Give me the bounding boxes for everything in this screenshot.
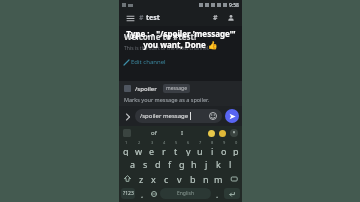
button[interactable]: Shift (119, 171, 135, 186)
staticText: w (135, 145, 143, 156)
staticText: o (221, 145, 227, 156)
button[interactable]: Menu (124, 12, 136, 24)
button[interactable]: Enter (224, 188, 240, 199)
button[interactable]: ?123 (121, 188, 135, 199)
staticText: v (177, 173, 182, 185)
staticText: 3 (151, 140, 154, 145)
staticText: t (174, 145, 178, 156)
staticText: e (149, 145, 155, 156)
staticText: 4 (163, 140, 166, 145)
button[interactable]: /spoiler message (140, 109, 217, 123)
staticText: y (186, 145, 191, 156)
staticText: # (213, 13, 218, 23)
button[interactable]: Backspace (225, 171, 242, 186)
button[interactable]: /spoiler (124, 84, 237, 93)
button[interactable]: n (199, 171, 212, 186)
staticText: c (164, 173, 169, 185)
button[interactable]: f (164, 156, 176, 171)
staticText: u (197, 145, 203, 156)
button[interactable]: g (176, 156, 188, 171)
staticText: English (177, 190, 195, 197)
staticText: . (216, 189, 219, 198)
button[interactable]: x (147, 171, 160, 186)
button[interactable]: I (181, 129, 184, 137)
button[interactable]: a (126, 156, 139, 171)
button[interactable]: b (186, 171, 199, 186)
staticText: i (211, 145, 214, 156)
staticText: f (168, 158, 172, 170)
button[interactable]: Edit channel (124, 58, 166, 66)
button[interactable]: 9 (218, 140, 230, 156)
staticText: This is the start of the #test channel. (124, 45, 210, 52)
button[interactable]: Language (149, 189, 158, 198)
staticText: z (139, 173, 144, 185)
staticText: test (146, 13, 160, 23)
staticText: s (143, 158, 148, 170)
staticText: l (229, 158, 232, 170)
staticText: message (166, 85, 187, 92)
button[interactable]: v (173, 171, 186, 186)
staticText: q (123, 145, 129, 156)
staticText: you want, Done 👍 (143, 39, 218, 50)
button[interactable]: 6 (182, 140, 194, 156)
staticText: 8 (211, 140, 214, 145)
button[interactable]: Attach (122, 111, 133, 122)
staticText: p (233, 145, 239, 156)
button[interactable]: 3 (145, 140, 158, 156)
button[interactable]: 0 (230, 140, 242, 156)
staticText: 9 (223, 140, 226, 145)
button[interactable]: Send (225, 109, 239, 123)
button[interactable]: Clipboard (123, 129, 131, 137)
staticText: 7 (199, 140, 202, 145)
button[interactable]: h (188, 156, 200, 171)
button[interactable]: 7 (194, 140, 206, 156)
staticText: n (203, 173, 209, 185)
staticText: 9:58 (229, 2, 239, 9)
staticText: 5 (175, 140, 178, 145)
button[interactable]: d (152, 156, 164, 171)
staticText: b (190, 173, 196, 185)
button[interactable]: 2 (132, 140, 145, 156)
staticText: Welcome to #test! (124, 31, 197, 42)
staticText: /spoiler message (140, 112, 189, 120)
button[interactable]: Voice input (230, 129, 238, 137)
button[interactable]: of (151, 129, 157, 137)
button[interactable]: j (200, 156, 212, 171)
button[interactable]: 5 (170, 140, 182, 156)
button[interactable]: 8 (206, 140, 218, 156)
button[interactable]: k (212, 156, 224, 171)
button[interactable]: 4 (158, 140, 170, 156)
button[interactable]: English (160, 188, 211, 199)
button[interactable]: Search (209, 12, 221, 24)
staticText: Edit channel (131, 58, 166, 66)
button[interactable]: z (135, 171, 147, 186)
button[interactable]: Period (213, 189, 222, 198)
button[interactable]: s (139, 156, 152, 171)
staticText: x (151, 173, 156, 185)
button[interactable]: Favorites (219, 130, 226, 137)
staticText: g (179, 158, 185, 170)
staticText: m (214, 173, 223, 185)
staticText: 0 (235, 140, 238, 145)
staticText: 1 (125, 140, 128, 145)
button[interactable]: Emoji (209, 112, 217, 120)
staticText: ?123 (123, 190, 134, 197)
button[interactable]: Members (225, 12, 237, 24)
staticText: r (162, 145, 166, 156)
button[interactable]: 1 (119, 140, 132, 156)
staticText: a (130, 158, 136, 170)
staticText: Type : - "/spoiler 'message'" (126, 28, 236, 39)
button[interactable]: m (212, 171, 225, 186)
staticText: j (205, 158, 208, 170)
button[interactable]: Comma (138, 189, 147, 198)
button[interactable]: l (224, 156, 236, 171)
button[interactable]: Emoji (208, 130, 215, 137)
button[interactable]: c (160, 171, 173, 186)
staticText: Marks your message as a spoiler. (124, 96, 209, 103)
staticText: # (139, 13, 144, 23)
staticText: d (155, 158, 161, 170)
staticText: , (141, 189, 144, 198)
staticText: 2 (138, 140, 141, 145)
staticText: k (216, 158, 221, 170)
staticText: 6 (187, 140, 190, 145)
